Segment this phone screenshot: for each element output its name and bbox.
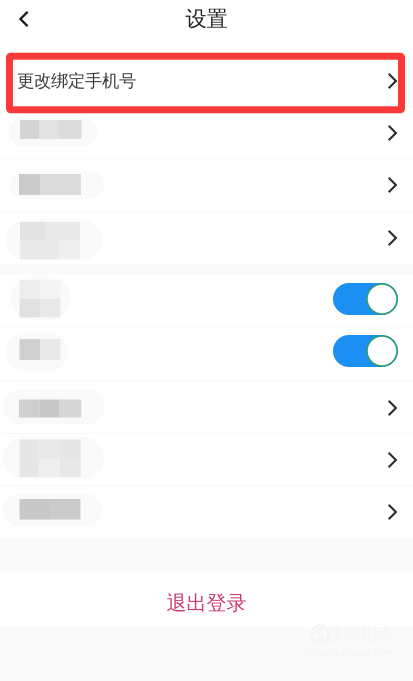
button[interactable]: Setting: [0, 327, 413, 379]
button[interactable]: Setting: [0, 212, 413, 264]
button[interactable]: Setting: [0, 107, 413, 159]
button[interactable]: Toggle setting: [333, 283, 398, 315]
staticText: 设置: [185, 6, 227, 32]
button[interactable]: Setting: [0, 486, 413, 538]
button[interactable]: Setting: [0, 434, 413, 486]
button[interactable]: Toggle setting: [333, 335, 398, 367]
button[interactable]: Setting: [0, 382, 413, 434]
button[interactable]: 更改绑定手机号: [0, 55, 413, 107]
button[interactable]: 退出登录: [106, 580, 306, 626]
staticText: 更改绑定手机号: [17, 70, 136, 92]
staticText: 退出登录: [166, 591, 246, 615]
button[interactable]: Setting: [0, 159, 413, 211]
staticText: S: [315, 623, 324, 645]
button[interactable]: Back: [2, 0, 46, 41]
button[interactable]: Setting: [0, 275, 413, 327]
